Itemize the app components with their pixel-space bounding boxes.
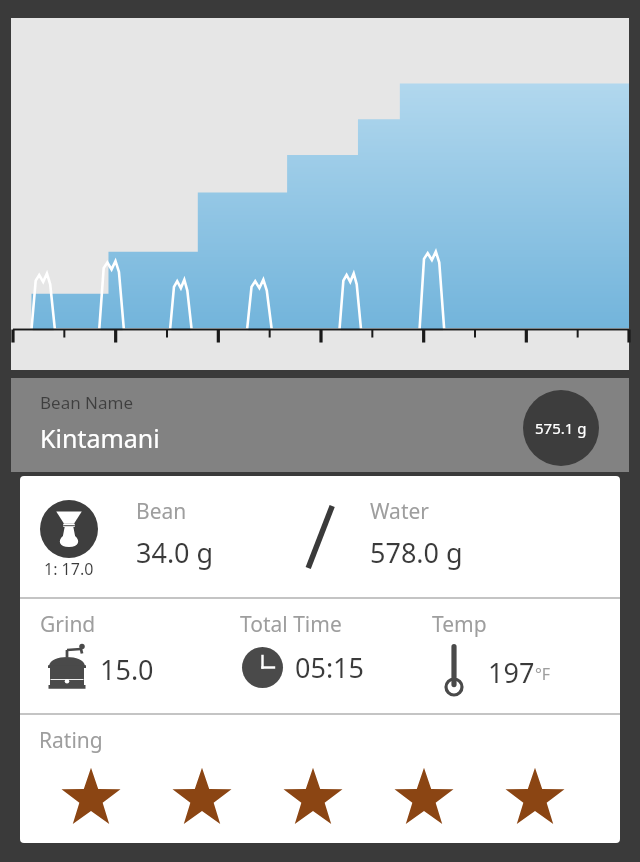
button[interactable]: Grind [32,599,232,713]
staticText: 15.0 [100,651,154,688]
button[interactable]: Rate 1 stars [60,763,171,831]
button[interactable]: Total Time [232,599,422,713]
staticText: 34.0 g [136,534,214,571]
button[interactable]: Rate 5 stars [504,763,615,831]
staticText: Kintamani [40,421,160,455]
button[interactable]: Rate 2 stars [171,763,282,831]
staticText: 1: 17.0 [44,558,94,580]
button[interactable]: Brew chart [11,18,629,370]
staticText: Rating [39,726,103,755]
staticText: Water [370,497,429,526]
staticText: 05:15 [295,649,365,686]
button[interactable]: Rate 4 stars [393,763,504,831]
staticText: Total Time [240,610,342,639]
button[interactable]: Bean Name [11,378,629,472]
staticText: 197 [488,654,535,691]
staticText: 578.0 g [370,534,463,571]
button[interactable]: Rate 3 stars [282,763,393,831]
button[interactable]: Temp [422,599,620,713]
staticText: 575.1 g [535,418,587,438]
staticText: Grind [40,610,96,639]
staticText: Bean Name [40,391,134,414]
staticText: Temp [432,610,487,639]
staticText: °F [535,663,551,685]
staticText: Bean [136,497,187,526]
button[interactable]: 1: 17.0 [20,476,620,597]
